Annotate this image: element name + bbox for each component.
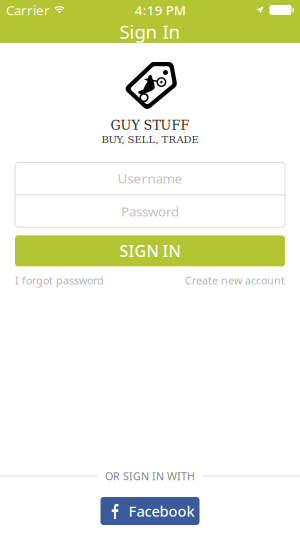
staticText: Facebook (128, 501, 194, 521)
staticText: BUY, SELL, TRADE (101, 134, 198, 145)
button[interactable]: Create new account (185, 273, 285, 287)
staticText: Sign In (119, 19, 180, 44)
button[interactable]: SIGN IN (15, 235, 285, 266)
staticText: Create new account (185, 273, 285, 287)
staticText: OR SIGN IN WITH (105, 469, 195, 483)
staticText: SIGN IN (119, 240, 180, 261)
staticText: GUY STUFF (110, 118, 189, 133)
button[interactable]: I forgot password (15, 273, 104, 287)
staticText: Carrier (6, 1, 50, 19)
staticText: I forgot password (15, 273, 104, 287)
staticText: 4:19 PM (135, 1, 186, 19)
staticText: Username (117, 169, 182, 187)
staticText: Password (121, 202, 179, 220)
button[interactable]: Facebook (100, 497, 199, 525)
